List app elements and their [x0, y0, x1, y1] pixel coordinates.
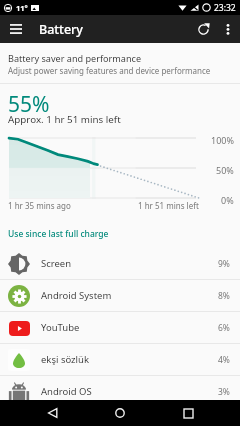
- staticText: 6%: [218, 322, 230, 334]
- staticText: Battery: [39, 21, 83, 38]
- staticText: Adjust power saving features and device …: [8, 65, 211, 76]
- button[interactable]: Android OS: [0, 376, 240, 407]
- button[interactable]: Home: [108, 401, 132, 425]
- staticText: 1 hr 51 mins left: [138, 200, 199, 211]
- staticText: 0%: [221, 194, 234, 206]
- button[interactable]: Android System: [0, 280, 240, 311]
- button[interactable]: Back: [41, 401, 65, 425]
- staticText: 1 hr 35 mins ago: [8, 200, 71, 211]
- button[interactable]: Recent apps: [176, 401, 200, 425]
- staticText: 9%: [218, 258, 230, 270]
- staticText: 55%: [8, 90, 50, 119]
- staticText: 11°: [16, 3, 28, 13]
- button[interactable]: YouTube: [0, 312, 240, 343]
- staticText: Screen: [41, 257, 72, 270]
- staticText: YouTube: [41, 321, 80, 334]
- staticText: 50%: [216, 164, 234, 176]
- staticText: 4%: [218, 354, 230, 366]
- button[interactable]: ekşi sözlük: [0, 344, 240, 375]
- staticText: Battery saver and performance: [8, 52, 142, 64]
- staticText: Approx. 1 hr 51 mins left: [8, 113, 121, 126]
- button[interactable]: Navigation menu: [0, 15, 31, 43]
- staticText: Android OS: [41, 385, 92, 398]
- staticText: 23:32: [214, 2, 236, 14]
- button[interactable]: Refresh: [189, 15, 217, 43]
- button[interactable]: Screen: [0, 248, 240, 279]
- staticText: Use since last full charge: [8, 228, 109, 240]
- button[interactable]: Use since last full charge: [0, 217, 117, 249]
- staticText: 3%: [218, 386, 230, 398]
- staticText: Android System: [41, 289, 112, 302]
- staticText: 8%: [218, 290, 230, 302]
- staticText: ekşi sözlük: [41, 353, 89, 366]
- button[interactable]: More options: [215, 15, 240, 43]
- staticText: 100%: [211, 134, 234, 146]
- button[interactable]: Battery saver and performance: [0, 43, 240, 83]
